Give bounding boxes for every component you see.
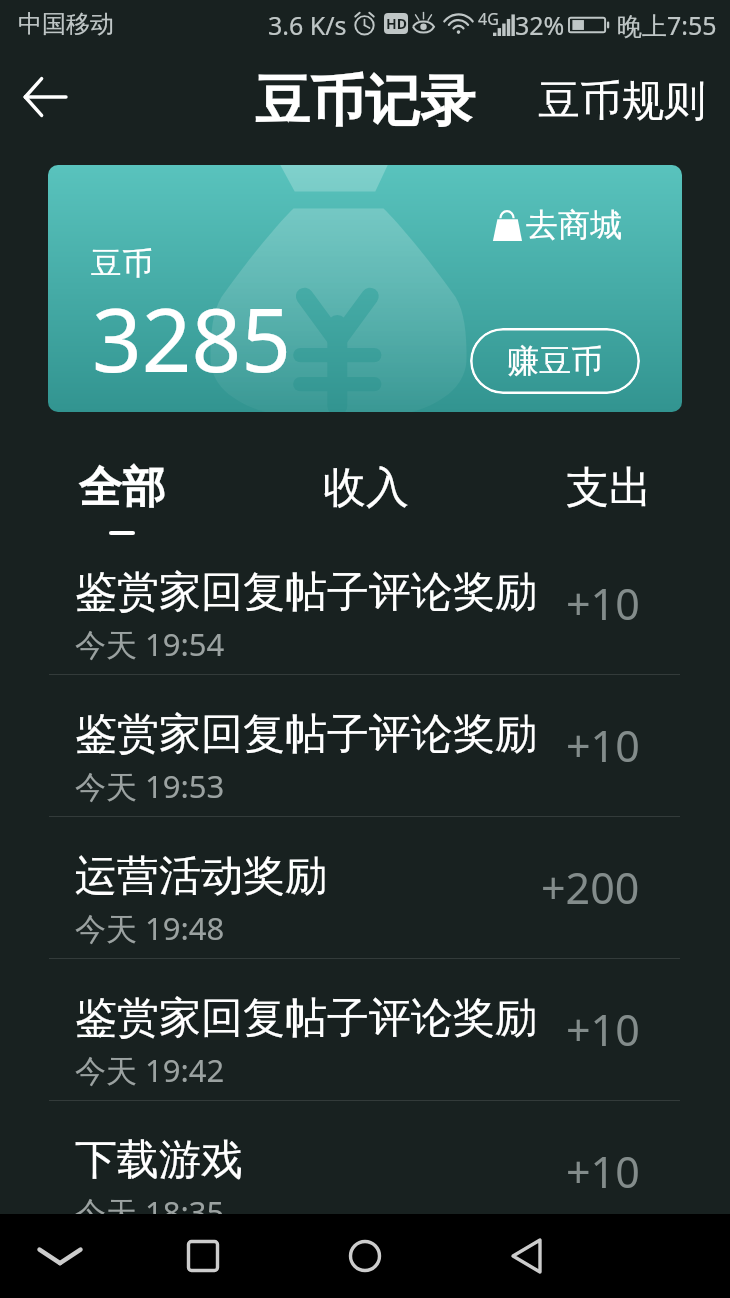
staticText: +10 [566, 1142, 640, 1201]
staticText: 今天 18:35 [75, 1191, 225, 1233]
staticText: 3.6 K/s [268, 8, 347, 42]
staticText: 今天 19:54 [75, 623, 225, 665]
staticText: 收入 [323, 461, 409, 515]
staticText: 鉴赏家回复帖子评论奖励 [75, 708, 537, 761]
staticText: 赚豆币 [507, 341, 603, 381]
staticText: 豆币规则 [538, 75, 706, 128]
staticText: +10 [566, 716, 640, 775]
button[interactable]: 全部 [0, 461, 244, 535]
staticText: +10 [566, 574, 640, 633]
staticText: 今天 19:53 [75, 765, 225, 807]
staticText: 豆币 [91, 244, 153, 283]
button[interactable]: 支出 [487, 461, 730, 515]
button[interactable]: 收入 [244, 461, 487, 515]
button[interactable]: Recent apps [171, 1224, 235, 1288]
button[interactable]: 鉴赏家回复帖子评论奖励 [0, 533, 730, 674]
staticText: 晚上7:55 [617, 8, 717, 42]
button[interactable]: Back [14, 66, 76, 128]
staticText: +10 [566, 1000, 640, 1059]
staticText: 运营活动奖励 [75, 850, 327, 903]
staticText: +200 [541, 858, 640, 917]
button[interactable]: 豆币规则 [538, 64, 706, 138]
button[interactable]: Home [333, 1224, 397, 1288]
staticText: HD [386, 14, 407, 33]
button[interactable]: Back [495, 1224, 559, 1288]
staticText: 中国移动 [18, 9, 114, 39]
button[interactable]: 鉴赏家回复帖子评论奖励 [0, 675, 730, 816]
staticText: 32% [515, 8, 565, 42]
staticText: 下载游戏 [75, 1134, 243, 1187]
button[interactable]: 运营活动奖励 [0, 817, 730, 958]
staticText: 全部 [79, 461, 165, 515]
staticText: 3285 [92, 279, 292, 397]
staticText: 豆币记录 [255, 67, 475, 136]
button[interactable]: Hide keyboard [28, 1224, 92, 1288]
staticText: 去商城 [526, 205, 622, 245]
staticText: 4G [478, 8, 499, 30]
button[interactable]: 去商城 [492, 205, 622, 245]
button[interactable]: 下载游戏 [0, 1101, 730, 1242]
staticText: 今天 19:48 [75, 907, 225, 949]
staticText: 鉴赏家回复帖子评论奖励 [75, 992, 537, 1045]
button[interactable]: 赚豆币 [470, 328, 640, 394]
button[interactable]: 鉴赏家回复帖子评论奖励 [0, 959, 730, 1100]
staticText: 支出 [566, 461, 652, 515]
staticText: 今天 19:42 [75, 1049, 225, 1091]
staticText: 鉴赏家回复帖子评论奖励 [75, 566, 537, 619]
